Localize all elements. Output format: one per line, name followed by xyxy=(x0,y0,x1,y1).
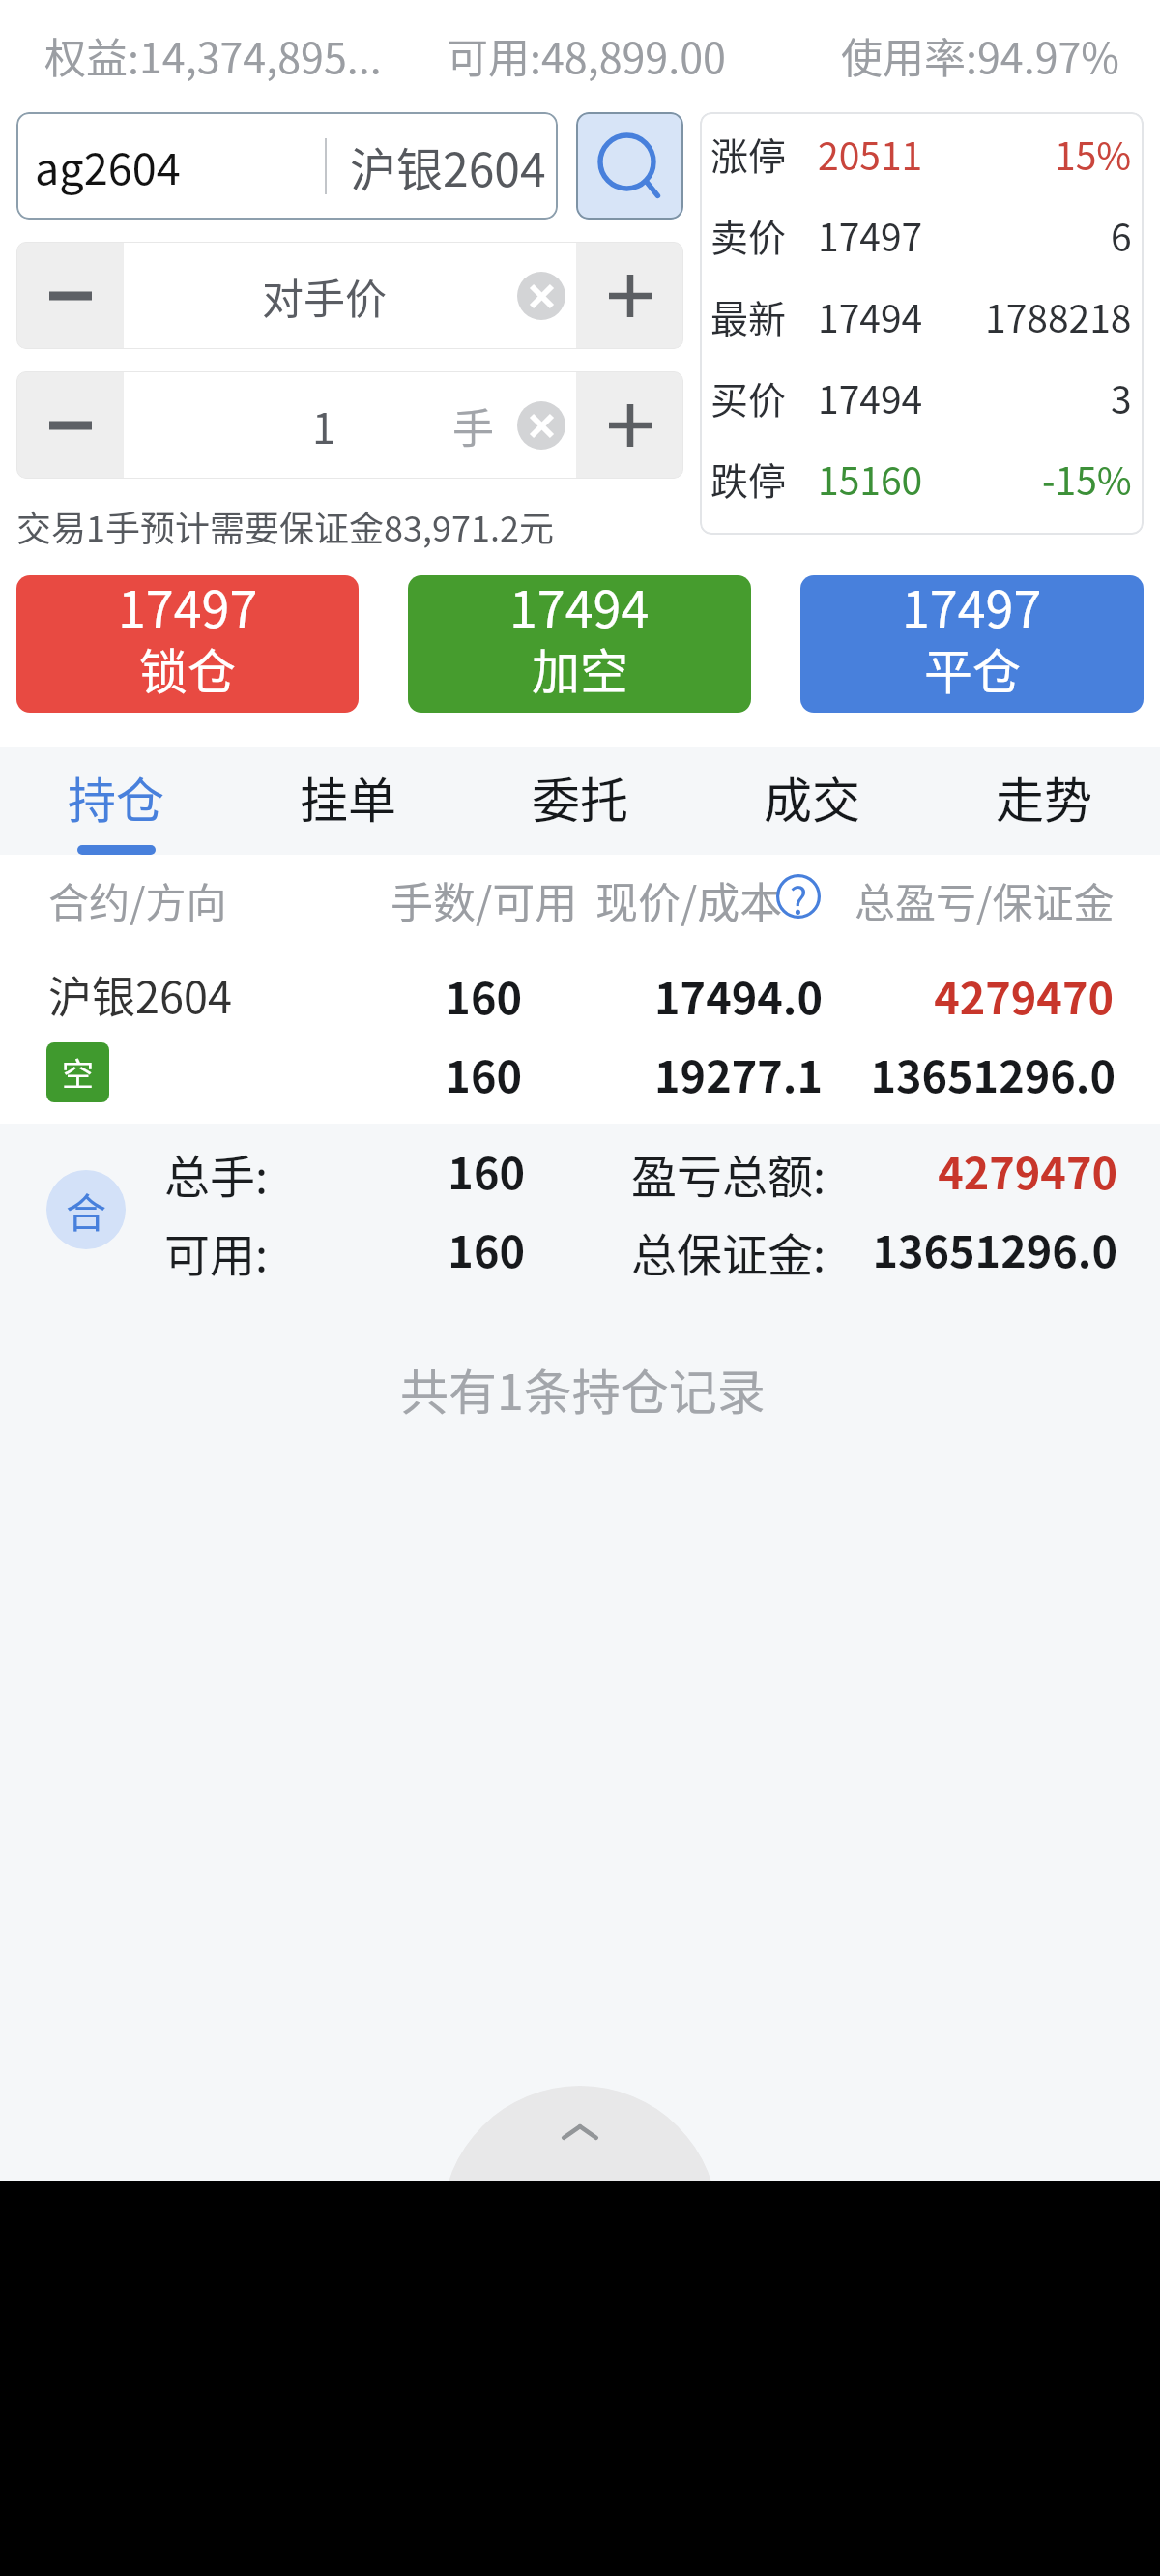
button[interactable]: 委托 xyxy=(464,747,696,855)
button[interactable]: Clear xyxy=(517,272,565,320)
button[interactable]: 成交 xyxy=(696,747,928,855)
button[interactable]: Increase xyxy=(576,242,683,349)
staticText: 总盈亏/保证金 xyxy=(855,870,1115,929)
staticText: 买价 xyxy=(710,370,787,424)
button[interactable]: Decrease xyxy=(16,242,124,349)
staticText: 加空 xyxy=(532,633,628,703)
staticText: 手数/可用 xyxy=(391,869,578,931)
staticText: 挂单 xyxy=(300,762,396,832)
staticText: 160 xyxy=(42,1139,525,1202)
staticText: 20511 xyxy=(818,127,923,181)
button[interactable]: 卖价 xyxy=(710,194,1132,276)
staticText: 19277.1 xyxy=(339,1042,823,1105)
staticText: 17497 xyxy=(818,208,923,262)
staticText: 沪银2604 xyxy=(350,132,546,200)
staticText: ag2604 xyxy=(35,134,181,197)
button[interactable]: 买价 xyxy=(710,357,1132,438)
button[interactable]: 17497 xyxy=(16,575,359,713)
staticText: 17494 xyxy=(509,575,650,642)
staticText: 跌停 xyxy=(710,452,787,506)
button[interactable]: Decrease xyxy=(16,371,124,479)
staticText: 160 xyxy=(39,1042,522,1105)
staticText: 平仓 xyxy=(924,633,1021,703)
staticText: 17497 xyxy=(902,575,1042,642)
staticText: 15160 xyxy=(818,452,923,506)
button[interactable]: Search xyxy=(576,112,683,220)
staticText: ? xyxy=(790,872,808,917)
staticText: 锁仓 xyxy=(139,633,236,703)
button[interactable]: 最新 xyxy=(710,276,1132,357)
button[interactable]: 涨停 xyxy=(710,112,1132,194)
staticText: -15% xyxy=(1042,452,1132,506)
staticText: 17494 xyxy=(818,370,923,424)
button[interactable]: Collapse panel xyxy=(442,2086,718,2362)
button[interactable]: 跌停 xyxy=(710,438,1132,519)
staticText: 160 xyxy=(39,964,522,1027)
staticText: 合约/方向 xyxy=(48,870,227,929)
staticText: 17494 xyxy=(818,289,923,343)
button[interactable]: 持仓 xyxy=(0,747,232,855)
staticText: 使用率:94.97% xyxy=(841,25,1119,85)
staticText: 可用:48,899.00 xyxy=(447,25,726,85)
staticText: 总保证金: xyxy=(631,1218,826,1284)
staticText: 可用: xyxy=(164,1218,269,1284)
staticText: 权益:14,374,895... xyxy=(44,25,382,85)
staticText: 卖价 xyxy=(710,208,787,262)
staticText: 17494.0 xyxy=(339,964,823,1027)
staticText: 17497 xyxy=(118,575,258,642)
staticText: 最新 xyxy=(710,289,787,343)
staticText: 共有1条持仓记录 xyxy=(400,1354,766,1423)
staticText: 1 xyxy=(312,395,335,455)
staticText: 13651296.0 xyxy=(634,1217,1117,1280)
button[interactable]: 1 xyxy=(124,371,576,479)
staticText: 现价/成本 xyxy=(595,869,783,931)
staticText: 交易1手预计需要保证金83,971.2元 xyxy=(16,501,554,551)
staticText: 走势 xyxy=(996,762,1092,832)
staticText: 13651296.0 xyxy=(632,1042,1116,1105)
staticText: 4279470 xyxy=(630,964,1114,1027)
staticText: 4279470 xyxy=(634,1139,1117,1202)
button[interactable]: 17497 xyxy=(800,575,1144,713)
button[interactable]: 沪银2604 xyxy=(0,951,1160,1124)
staticText: 盈亏总额: xyxy=(631,1140,826,1206)
button[interactable]: ag2604 xyxy=(16,112,558,220)
staticText: 对手价 xyxy=(262,266,387,326)
button[interactable]: 挂单 xyxy=(232,747,464,855)
button[interactable]: 走势 xyxy=(928,747,1160,855)
button[interactable]: 对手价 xyxy=(124,242,576,349)
staticText: 6 xyxy=(1111,208,1132,262)
staticText: 3 xyxy=(1111,370,1132,424)
button[interactable]: Clear xyxy=(517,401,565,450)
staticText: 空 xyxy=(62,1049,94,1096)
staticText: 合 xyxy=(66,1181,107,1240)
button[interactable]: 17494 xyxy=(408,575,751,713)
staticText: 委托 xyxy=(532,762,628,832)
staticText: 160 xyxy=(42,1217,525,1280)
staticText: 15% xyxy=(1055,127,1132,181)
staticText: 持仓 xyxy=(68,762,164,832)
staticText: 成交 xyxy=(764,762,860,832)
staticText: 手 xyxy=(452,395,494,455)
staticText: 沪银2604 xyxy=(48,963,232,1026)
staticText: 总手: xyxy=(164,1140,269,1206)
staticText: 1788218 xyxy=(985,289,1132,343)
staticText: 涨停 xyxy=(710,127,787,181)
button[interactable]: Increase xyxy=(576,371,683,479)
